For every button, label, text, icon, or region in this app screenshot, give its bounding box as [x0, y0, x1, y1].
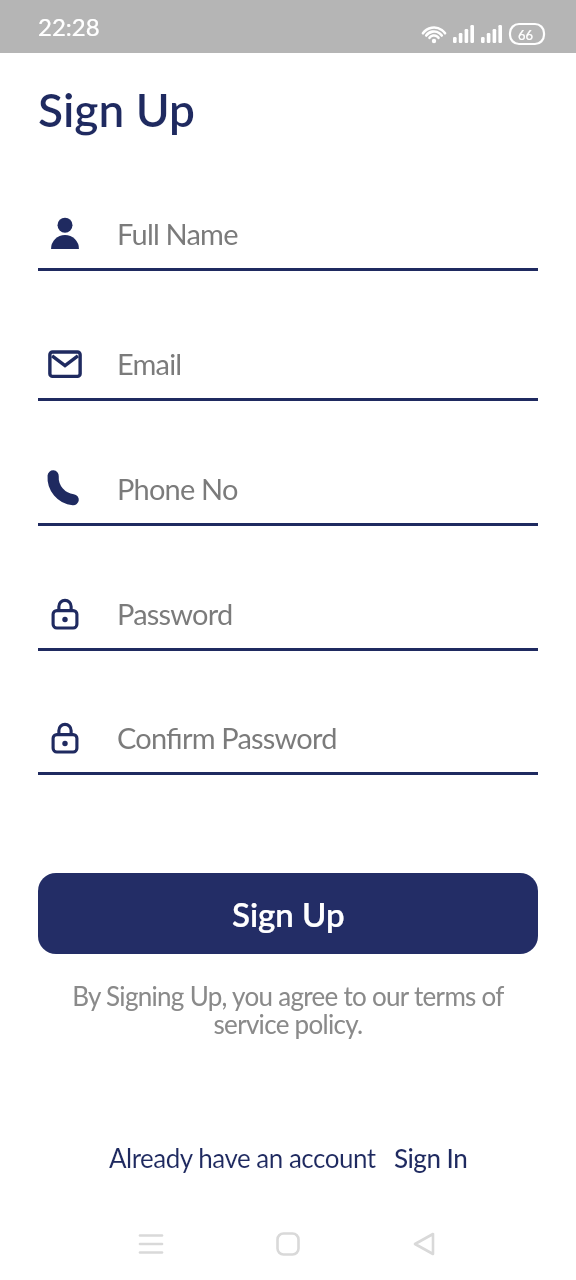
button[interactable]: Phone No	[38, 453, 538, 526]
staticText: Sign Up	[232, 894, 345, 934]
button[interactable]	[266, 1222, 310, 1266]
button[interactable]: Password	[38, 578, 538, 651]
staticText: Email	[117, 346, 182, 381]
button[interactable]: Email	[38, 328, 538, 401]
staticText: Confirm Password	[117, 720, 337, 755]
button[interactable]: Full Name	[38, 198, 538, 271]
staticText: Full Name	[117, 216, 238, 251]
button[interactable]	[129, 1222, 173, 1266]
staticText: 22:28	[38, 12, 100, 41]
staticText: Password	[117, 596, 233, 631]
staticText: Already have an account	[109, 1142, 376, 1173]
button[interactable]: Sign In	[394, 1142, 468, 1173]
button[interactable]	[402, 1222, 446, 1266]
staticText: Sign Up	[38, 82, 195, 137]
staticText: Sign In	[394, 1142, 468, 1173]
staticText: 66	[518, 27, 534, 43]
button[interactable]: Sign Up	[38, 873, 538, 954]
staticText: By Signing Up, you agree to our terms of…	[0, 980, 576, 1040]
button[interactable]: Confirm Password	[38, 702, 538, 775]
staticText: Phone No	[117, 471, 238, 506]
